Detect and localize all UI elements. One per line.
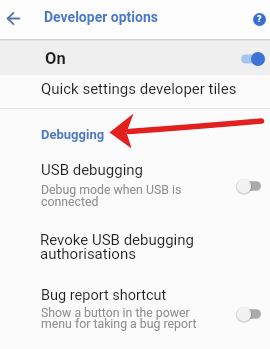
staticText: connected [41, 195, 99, 209]
staticText: ? [257, 14, 262, 25]
button[interactable] [0, 280, 270, 336]
staticText: Debug mode when USB is [41, 183, 182, 197]
staticText: Developer options [44, 9, 159, 25]
button[interactable] [0, 224, 270, 268]
staticText: menu for taking a bug report [41, 317, 197, 331]
button[interactable]: ? [246, 6, 270, 32]
staticText: Bug report shortcut [41, 287, 167, 304]
button[interactable] [0, 75, 270, 112]
staticText: Revoke USB debugging [40, 231, 194, 249]
staticText: Debugging [41, 127, 105, 142]
staticText: On [45, 49, 66, 68]
button[interactable] [0, 152, 270, 212]
button[interactable] [0, 4, 27, 32]
staticText: Quick settings developer tiles [41, 80, 237, 98]
staticText: Show a button in the power [41, 306, 190, 320]
button[interactable] [0, 41, 270, 75]
staticText: authorisations [40, 245, 136, 263]
staticText: USB debugging [41, 161, 144, 179]
